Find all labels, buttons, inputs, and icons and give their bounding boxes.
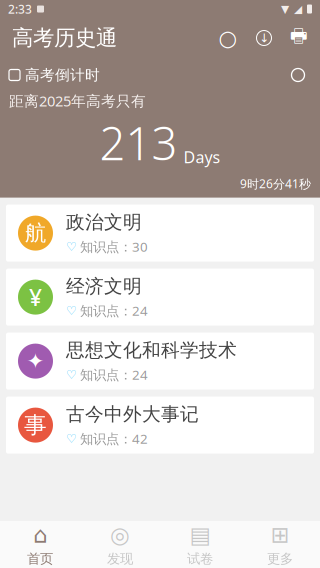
staticText: 9时26分41秒: [240, 176, 311, 192]
staticText: 距离2025年高考只有: [9, 91, 146, 110]
staticText: 知识点：30: [80, 238, 148, 255]
staticText: ♡: [66, 432, 77, 445]
staticText: ▤: [189, 522, 210, 548]
button[interactable]: ▤: [160, 521, 240, 567]
staticText: ↓: [259, 31, 269, 45]
staticText: 试卷: [187, 551, 213, 567]
button[interactable]: Print: [282, 18, 316, 58]
button[interactable]: ✦: [6, 333, 314, 390]
button[interactable]: ◎: [80, 521, 160, 567]
staticText: ✦: [26, 349, 44, 373]
staticText: ♡: [66, 368, 77, 381]
staticText: ○: [218, 26, 237, 50]
staticText: 古今中外大事记: [66, 403, 199, 426]
staticText: 首页: [27, 551, 53, 567]
staticText: ¥: [29, 282, 42, 312]
staticText: 2:33: [8, 1, 32, 17]
staticText: 发现: [107, 551, 133, 567]
staticText: ▼: [281, 3, 289, 15]
staticText: 思想文化和科学技术: [66, 339, 237, 362]
staticText: 知识点：24: [80, 302, 148, 319]
button[interactable]: Settings: [285, 65, 311, 85]
button[interactable]: Download: [246, 18, 282, 58]
staticText: 🖶: [290, 22, 308, 53]
staticText: ◢: [294, 3, 302, 15]
staticText: 知识点：24: [80, 366, 148, 383]
staticText: Days: [183, 146, 220, 168]
staticText: 政治文明: [66, 211, 142, 234]
staticText: ♡: [66, 304, 77, 317]
button[interactable]: 事: [6, 397, 314, 454]
staticText: 更多: [267, 551, 293, 567]
button[interactable]: ¥: [6, 269, 314, 326]
staticText: 213: [99, 112, 177, 173]
staticText: 航: [25, 220, 46, 246]
staticText: 高考历史通: [12, 25, 117, 51]
button[interactable]: ⊞: [240, 521, 320, 567]
staticText: 知识点：42: [80, 430, 148, 447]
button[interactable]: ⌂: [0, 521, 80, 567]
staticText: 事: [24, 411, 47, 439]
staticText: ⊞: [270, 522, 289, 548]
button[interactable]: Search: [210, 18, 246, 58]
staticText: ⌂: [33, 522, 47, 548]
staticText: 高考倒计时: [25, 66, 100, 84]
staticText: ◎: [110, 522, 130, 548]
staticText: 经济文明: [66, 275, 142, 298]
staticText: ♡: [66, 240, 77, 253]
button[interactable]: 航: [6, 205, 314, 262]
